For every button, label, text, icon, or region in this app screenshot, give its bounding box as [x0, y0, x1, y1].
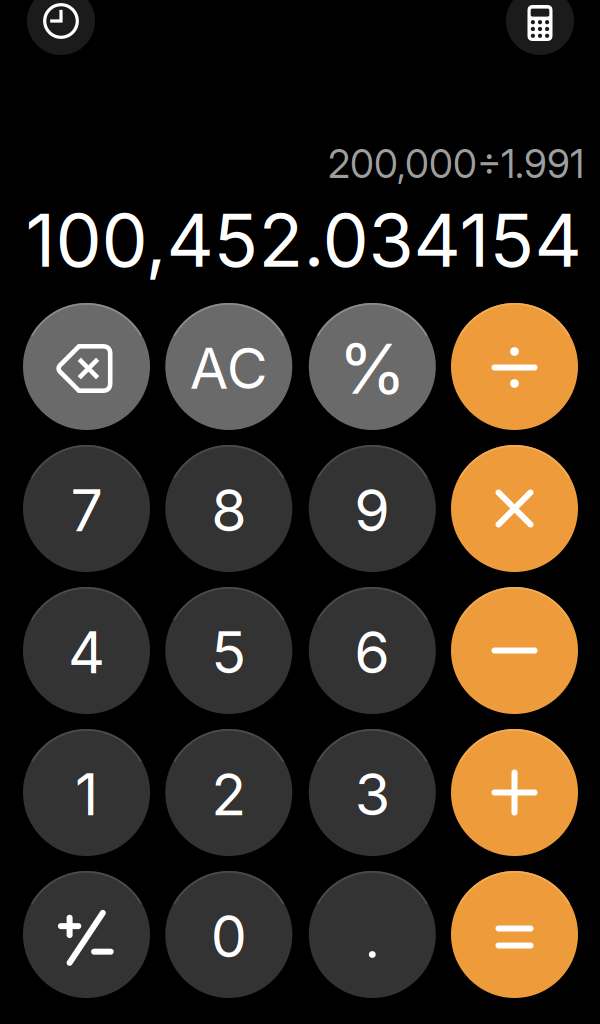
button[interactable]: Calculator [506, 0, 574, 55]
button[interactable]: 6 [309, 587, 436, 714]
staticText: 6 [354, 618, 390, 687]
button[interactable]: Subtract [451, 587, 578, 714]
staticText: AC [190, 335, 268, 402]
staticText: 2 [211, 760, 246, 829]
button[interactable]: 0 [165, 871, 292, 998]
staticText: 9 [354, 476, 390, 545]
button[interactable]: 7 [23, 445, 150, 572]
button[interactable]: 8 [165, 445, 292, 572]
staticText: 5 [211, 618, 246, 687]
staticText: % [338, 327, 406, 410]
staticText: 1 [75, 760, 98, 829]
button[interactable]: 9 [309, 445, 436, 572]
staticText: 0 [211, 902, 247, 971]
button[interactable]: 5 [165, 587, 292, 714]
staticText: 200,000÷1.991 [328, 141, 584, 187]
staticText: 8 [211, 476, 246, 545]
button[interactable]: Toggle sign [23, 871, 150, 998]
staticText: 4 [68, 618, 105, 687]
button[interactable]: 2 [165, 729, 292, 856]
button[interactable]: AC [165, 303, 292, 430]
button[interactable]: Delete [23, 303, 150, 430]
button[interactable]: Equals [451, 871, 578, 998]
staticText: 7 [70, 476, 102, 545]
button[interactable]: Divide [451, 303, 578, 430]
button[interactable]: Add [451, 729, 578, 856]
staticText: 3 [355, 760, 390, 829]
button[interactable]: 4 [23, 587, 150, 714]
button[interactable]: % [309, 303, 436, 430]
button[interactable]: 3 [309, 729, 436, 856]
button[interactable]: Recents [27, 0, 95, 55]
button[interactable]: Multiply [451, 445, 578, 572]
button[interactable]: Decimal point [309, 871, 436, 998]
staticText: 100,452.034154 [25, 196, 581, 284]
button[interactable]: 1 [23, 729, 150, 856]
